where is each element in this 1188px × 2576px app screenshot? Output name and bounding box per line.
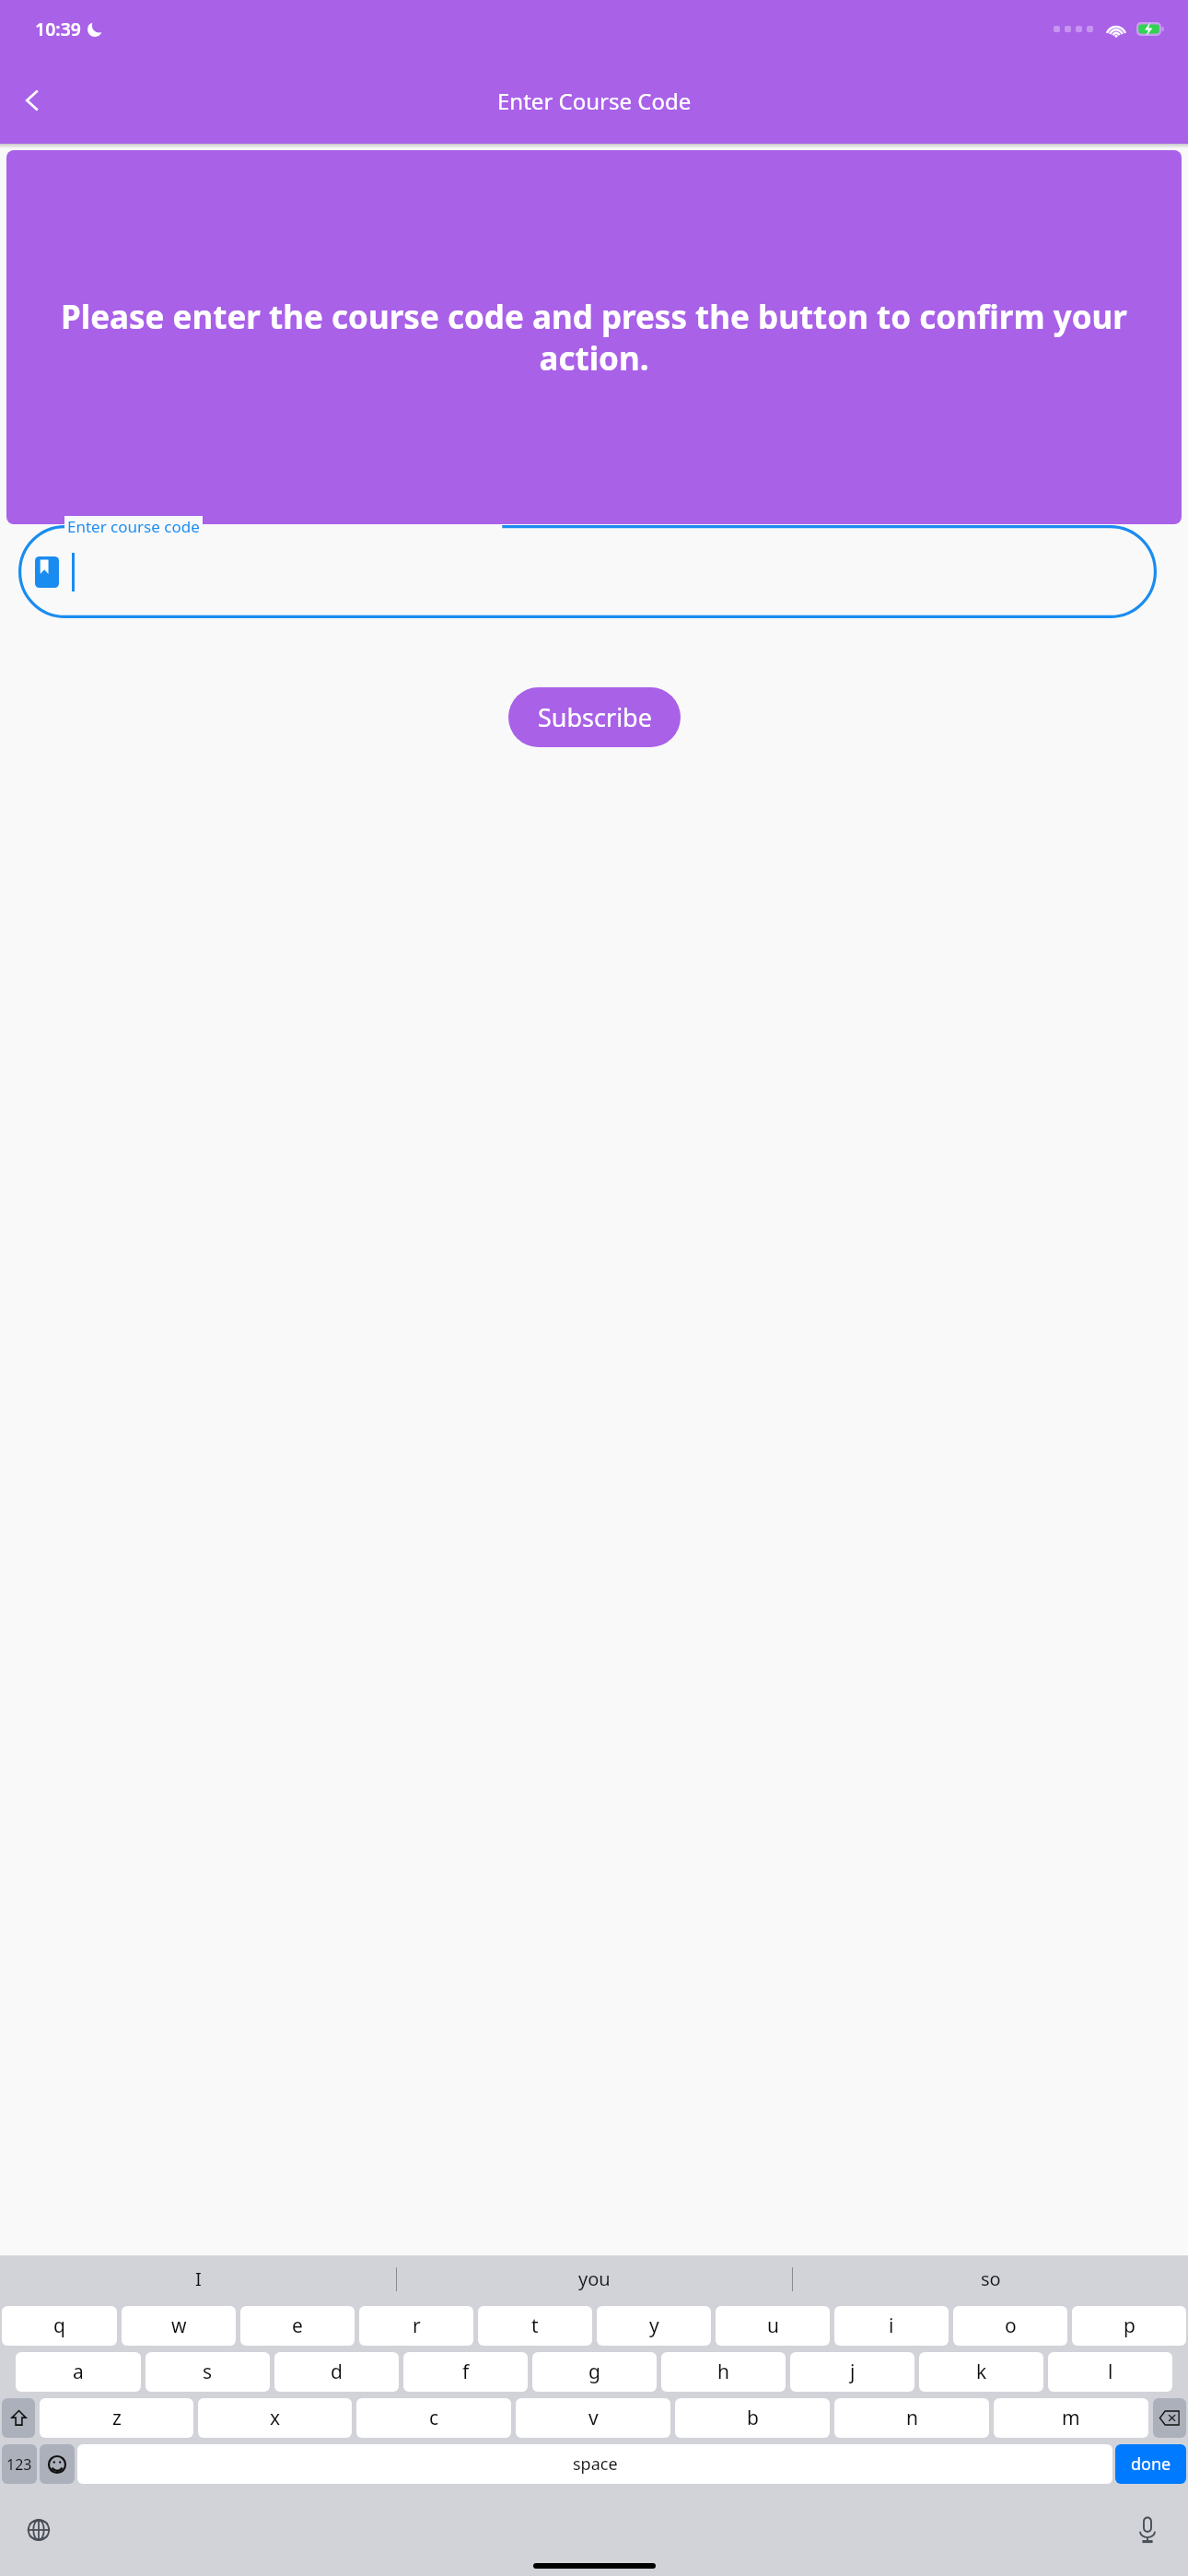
staticText: q (53, 2313, 65, 2339)
staticText: r (413, 2313, 421, 2339)
staticText: n (906, 2405, 918, 2431)
button[interactable]: g (532, 2352, 657, 2392)
button[interactable]: m (994, 2398, 1148, 2438)
button[interactable]: p (1072, 2306, 1186, 2346)
button[interactable]: f (403, 2352, 528, 2392)
button[interactable]: t (478, 2306, 592, 2346)
staticText: Subscribe (538, 700, 652, 734)
staticText: u (767, 2313, 779, 2339)
button[interactable]: Subscribe (508, 687, 681, 747)
button[interactable]: q (2, 2306, 117, 2346)
staticText: g (588, 2359, 600, 2385)
staticText: b (747, 2405, 759, 2431)
button[interactable]: space (77, 2444, 1112, 2484)
button[interactable]: k (919, 2352, 1043, 2392)
staticText: d (331, 2359, 343, 2385)
staticText: o (1005, 2313, 1017, 2339)
button[interactable]: Backspace (1153, 2398, 1186, 2438)
staticText: p (1124, 2313, 1136, 2339)
button[interactable]: d (274, 2352, 399, 2392)
staticText: y (649, 2313, 659, 2339)
button[interactable]: n (834, 2398, 989, 2438)
button[interactable]: j (790, 2352, 914, 2392)
button[interactable]: x (198, 2398, 352, 2438)
staticText: w (171, 2313, 187, 2339)
staticText: h (717, 2359, 729, 2385)
staticText: c (429, 2405, 439, 2431)
staticText: Enter Course Code (497, 86, 692, 116)
button[interactable]: b (675, 2398, 830, 2438)
button[interactable]: I (0, 2255, 396, 2302)
button[interactable]: y (597, 2306, 711, 2346)
button[interactable]: h (661, 2352, 786, 2392)
staticText: v (588, 2405, 599, 2431)
staticText: you (578, 2266, 611, 2291)
staticText: space (573, 2453, 618, 2476)
staticText: k (976, 2359, 987, 2385)
staticText: l (1108, 2359, 1113, 2385)
staticText: x (270, 2405, 281, 2431)
staticText: j (850, 2359, 856, 2385)
button[interactable]: c (356, 2398, 511, 2438)
button[interactable]: done (1115, 2444, 1186, 2484)
staticText: f (462, 2359, 470, 2385)
staticText: e (292, 2313, 303, 2339)
staticText: a (73, 2359, 84, 2385)
staticText: i (889, 2313, 894, 2339)
staticText: done (1131, 2453, 1171, 2476)
staticText: 10:39 (35, 17, 81, 41)
button[interactable]: i (834, 2306, 949, 2346)
button[interactable]: e (240, 2306, 355, 2346)
button[interactable]: Shift (2, 2398, 35, 2438)
button[interactable]: Enter course code (18, 525, 1157, 618)
button[interactable]: l (1048, 2352, 1172, 2392)
button[interactable]: v (516, 2398, 670, 2438)
staticText: 123 (6, 2454, 32, 2475)
staticText: m (1062, 2405, 1080, 2431)
button[interactable]: r (359, 2306, 473, 2346)
button[interactable]: Voice input (1127, 2510, 1168, 2550)
button[interactable]: a (16, 2352, 141, 2392)
staticText: so (981, 2266, 1001, 2291)
button[interactable]: z (40, 2398, 193, 2438)
staticText: t (531, 2313, 539, 2339)
staticText: Please enter the course code and press t… (30, 295, 1158, 380)
staticText: z (112, 2405, 122, 2431)
button[interactable]: you (397, 2255, 792, 2302)
staticText: s (203, 2359, 213, 2385)
button[interactable]: 123 (2, 2444, 37, 2484)
button[interactable]: Back (7, 75, 59, 126)
button[interactable]: Change keyboard language (18, 2510, 59, 2550)
button[interactable]: o (953, 2306, 1067, 2346)
staticText: I (195, 2266, 202, 2291)
button[interactable]: so (793, 2255, 1188, 2302)
staticText: Enter course code (67, 516, 200, 537)
button[interactable]: s (146, 2352, 270, 2392)
button[interactable]: Emoji (40, 2444, 75, 2484)
button[interactable]: u (716, 2306, 830, 2346)
button[interactable]: w (122, 2306, 236, 2346)
